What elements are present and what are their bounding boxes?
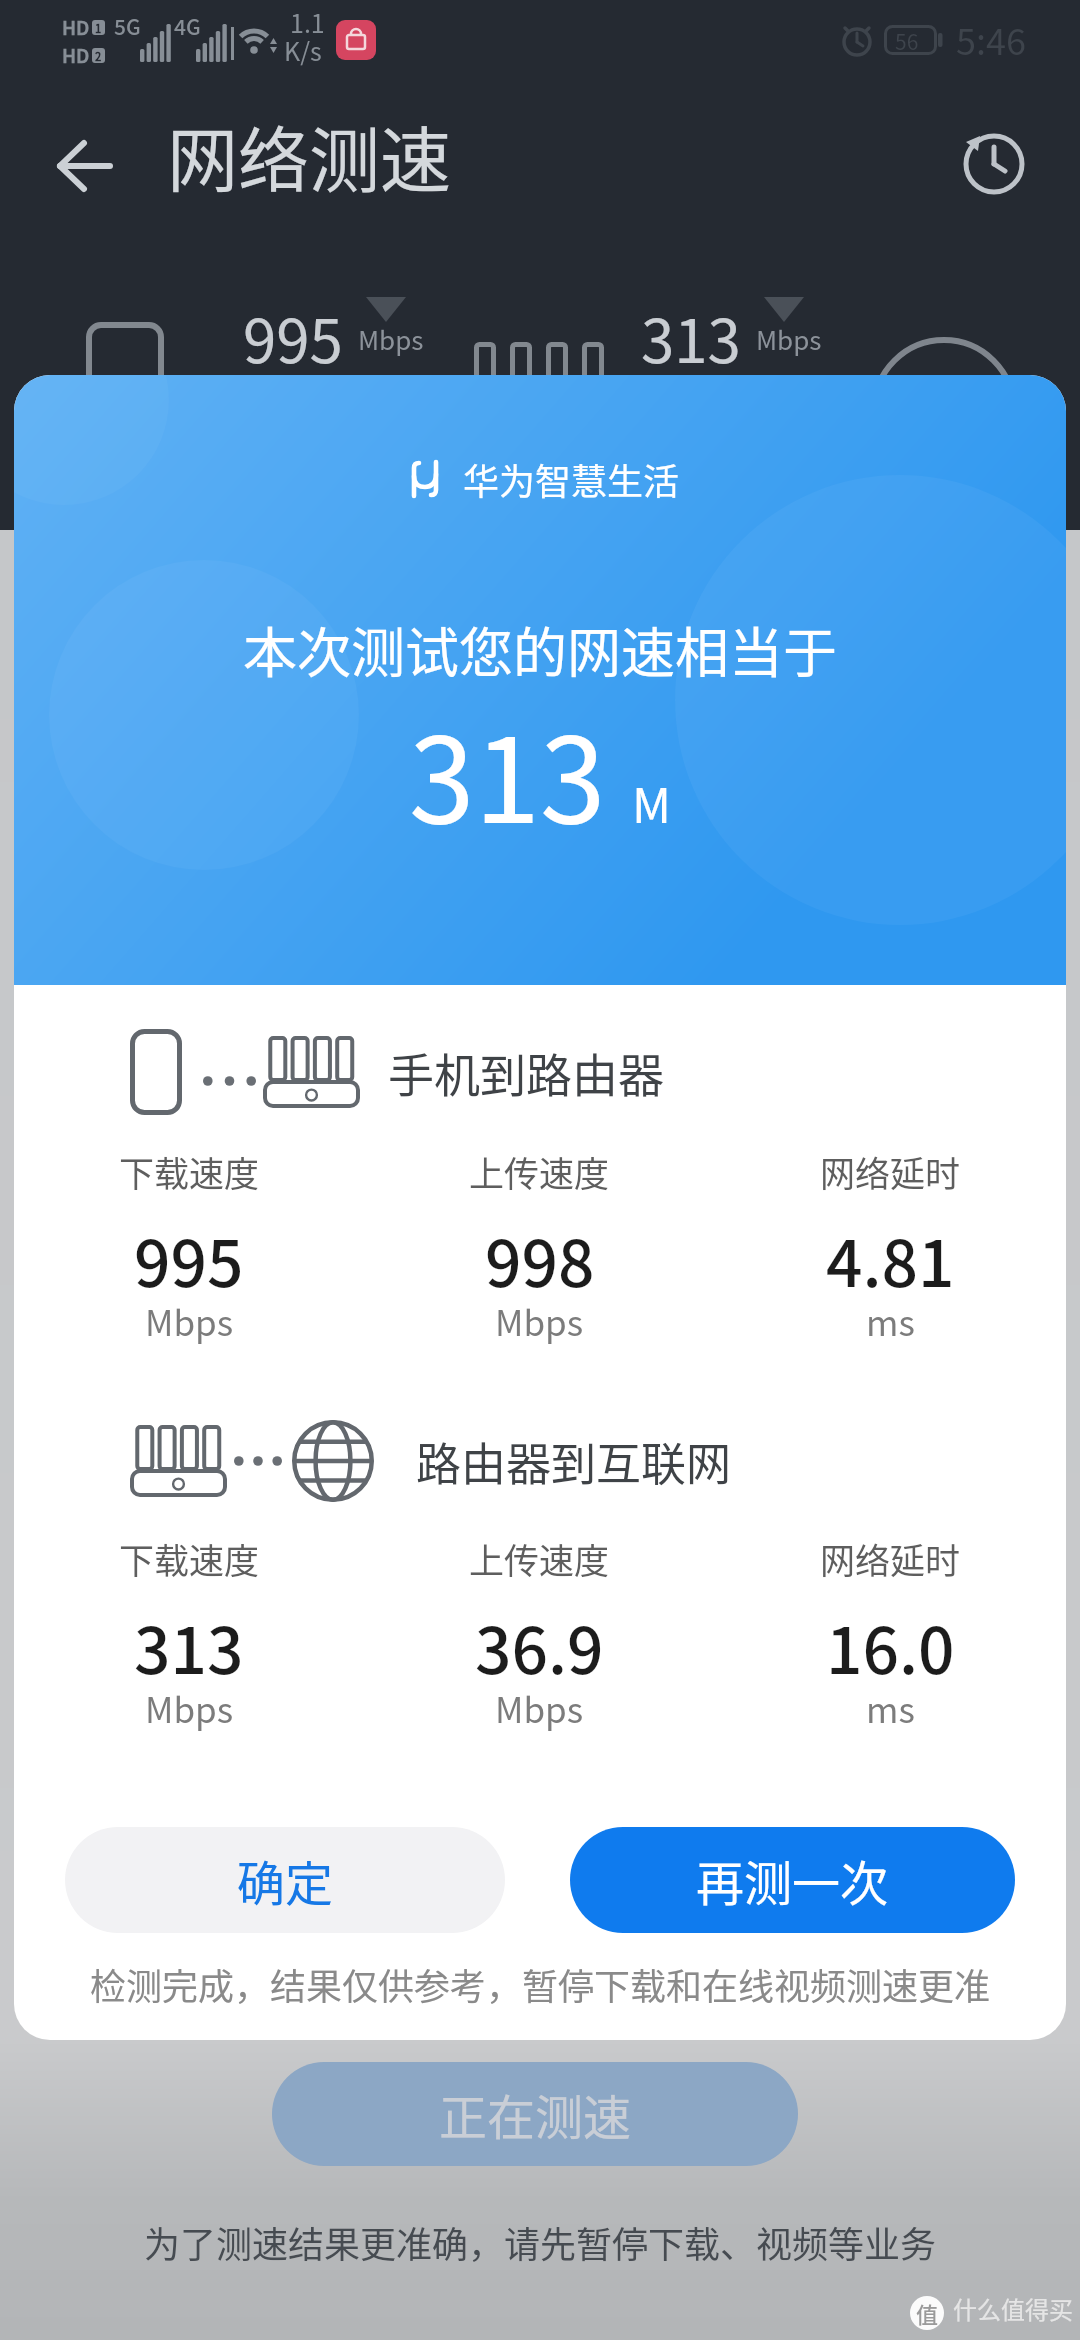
staticText: 下载速度: [119, 1533, 260, 1584]
staticText: 2: [95, 48, 102, 63]
staticText: 网络测速: [167, 104, 452, 207]
staticText: HD: [62, 41, 90, 69]
staticText: Mbps: [756, 320, 822, 358]
staticText: 检测完成，结果仅供参考，暂停下载和在线视频测速更准: [90, 1958, 991, 2010]
staticText: 313: [409, 686, 606, 857]
staticText: 4.81: [826, 1213, 955, 1306]
staticText: 什么值得买: [953, 2291, 1073, 2326]
staticText: 1.1: [290, 4, 325, 40]
staticText: HD: [62, 13, 90, 41]
button[interactable]: 再测一次: [570, 1827, 1015, 1933]
staticText: 995: [243, 293, 343, 380]
staticText: 上传速度: [469, 1533, 610, 1584]
staticText: 本次测试您的网速相当于: [243, 610, 837, 688]
staticText: 正在测速: [439, 2079, 632, 2149]
staticText: 华为智慧生活: [463, 453, 680, 505]
staticText: 下载速度: [119, 1146, 260, 1197]
button[interactable]: 正在测速: [272, 2062, 798, 2166]
staticText: 56: [895, 26, 919, 56]
staticText: 再测一次: [696, 1845, 889, 1915]
staticText: 16.0: [826, 1600, 955, 1693]
staticText: 36.9: [475, 1600, 604, 1693]
staticText: 值: [916, 2297, 939, 2329]
staticText: 手机到路由器: [388, 1039, 664, 1106]
staticText: 313: [641, 293, 741, 380]
staticText: Mbps: [145, 1295, 234, 1346]
staticText: M: [632, 767, 671, 837]
staticText: 网络延时: [820, 1146, 961, 1197]
staticText: Mbps: [495, 1295, 584, 1346]
staticText: 为了测速结果更准确，请先暂停下载、视频等业务: [144, 2216, 937, 2268]
staticText: 路由器到互联网: [416, 1429, 732, 1494]
staticText: 4G: [174, 11, 201, 41]
staticText: Mbps: [145, 1682, 234, 1733]
button[interactable]: [54, 136, 114, 196]
button[interactable]: 确定: [65, 1827, 505, 1933]
staticText: 网络延时: [820, 1533, 961, 1584]
staticText: 5G: [114, 11, 141, 41]
staticText: 998: [485, 1213, 595, 1306]
staticText: 上传速度: [469, 1146, 610, 1197]
staticText: 5:46: [956, 13, 1026, 65]
staticText: Mbps: [358, 320, 424, 358]
staticText: 995: [134, 1213, 244, 1306]
staticText: 确定: [237, 1845, 334, 1915]
staticText: K/s: [284, 32, 322, 68]
button[interactable]: [962, 132, 1026, 196]
staticText: ms: [866, 1682, 915, 1733]
staticText: 313: [134, 1600, 244, 1693]
staticText: Mbps: [495, 1682, 584, 1733]
staticText: ms: [866, 1295, 915, 1346]
staticText: 1: [95, 20, 102, 35]
